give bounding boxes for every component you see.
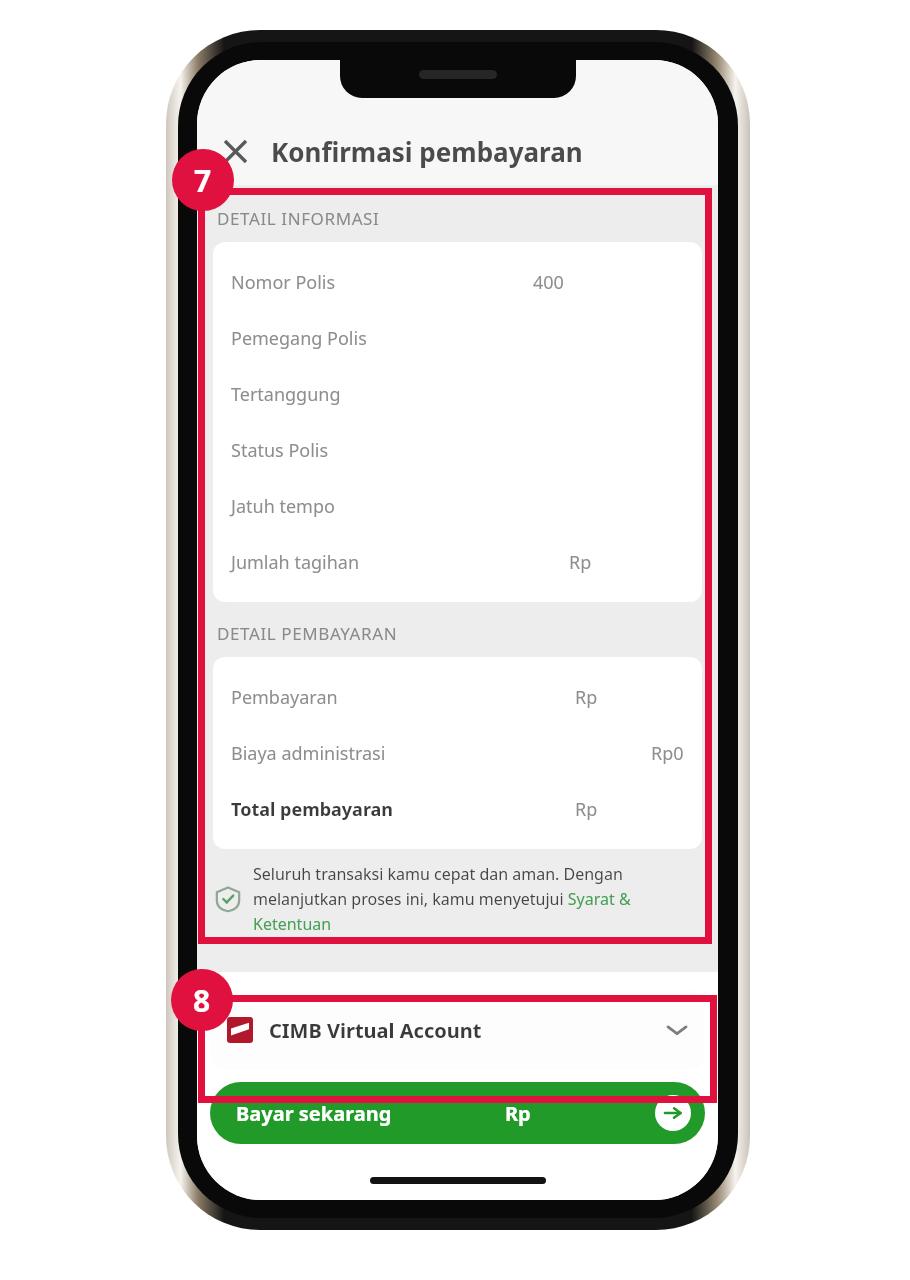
staticText: Rp [575, 797, 598, 822]
staticText: Pemegang Polis [231, 326, 367, 351]
staticText: Jumlah tagihan [231, 550, 360, 575]
staticText: Jatuh tempo [231, 494, 335, 519]
staticText: DETAIL PEMBAYARAN [217, 622, 398, 645]
staticText: Pembayaran [231, 685, 338, 710]
staticText: Rp0 [651, 741, 684, 766]
staticText: Rp [569, 550, 592, 575]
staticText: 7 [194, 160, 212, 201]
button[interactable]: Bayar sekarang [210, 1082, 705, 1144]
staticText: CIMB Virtual Account [269, 1017, 482, 1044]
staticText: 8 [193, 980, 211, 1021]
staticText: Rp [505, 1100, 531, 1127]
button[interactable]: CIMB Virtual Account [211, 990, 704, 1070]
button[interactable]: Close [211, 127, 259, 175]
staticText: Total pembayaran [231, 797, 394, 822]
staticText: Konfirmasi pembayaran [271, 134, 583, 169]
staticText: Nomor Polis [231, 270, 336, 295]
staticText: Seluruh transaksi kamu cepat dan aman. D… [253, 863, 692, 934]
staticText: Tertanggung [231, 382, 341, 407]
staticText: 400 [533, 270, 564, 295]
staticText: Bayar sekarang [236, 1100, 392, 1127]
staticText: Biaya administrasi [231, 741, 386, 766]
staticText: Status Polis [231, 438, 329, 463]
staticText: DETAIL INFORMASI [217, 207, 380, 230]
staticText: Rp [575, 685, 598, 710]
